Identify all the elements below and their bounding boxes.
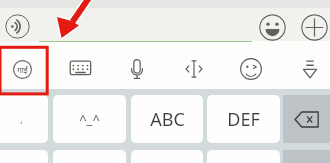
button[interactable]: [131, 150, 203, 163]
button[interactable]: Move cursor: [180, 55, 208, 83]
staticText: ^_^: [79, 110, 100, 128]
button[interactable]: Add: [301, 14, 328, 41]
button[interactable]: Emoji: [259, 14, 286, 41]
staticText: ABC: [150, 107, 185, 132]
button[interactable]: DEF: [207, 95, 280, 143]
button[interactable]: [53, 150, 126, 163]
staticText: गाई: [17, 64, 28, 75]
staticText: DEF: [227, 107, 260, 132]
button[interactable]: Hide keyboard: [296, 55, 324, 83]
button[interactable]: Emoticons: [237, 55, 265, 83]
button[interactable]: Backspace: [283, 95, 330, 143]
button[interactable]: [207, 150, 280, 163]
button[interactable]: ABC: [131, 95, 203, 143]
button[interactable]: ,: [0, 150, 48, 163]
button[interactable]: Voice typing: [123, 55, 151, 83]
staticText: ,: [20, 113, 23, 125]
button[interactable]: Language: [8, 55, 36, 83]
button[interactable]: ,: [0, 95, 48, 143]
button[interactable]: Keyboard layout: [66, 55, 94, 83]
button[interactable]: ^_^: [53, 95, 126, 143]
button[interactable]: Voice input: [5, 14, 30, 39]
